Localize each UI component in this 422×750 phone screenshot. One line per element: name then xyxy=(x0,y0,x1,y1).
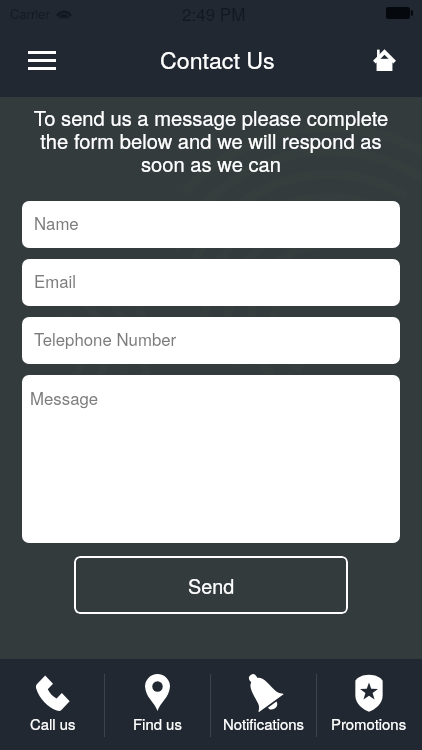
staticText: Message xyxy=(30,386,99,410)
staticText: Email xyxy=(34,269,76,293)
staticText: Send xyxy=(188,571,235,599)
staticText: Telephone Number xyxy=(34,327,177,351)
button[interactable]: Email xyxy=(22,259,400,306)
staticText: 2:49 PM xyxy=(182,1,246,25)
staticText: Name xyxy=(34,211,79,235)
staticText: Promotions xyxy=(331,713,407,734)
button[interactable]: Promotions xyxy=(316,659,422,750)
button[interactable]: Find us xyxy=(105,659,210,750)
staticText: Call us xyxy=(30,713,76,734)
staticText: Contact Us xyxy=(160,42,275,75)
button[interactable]: Telephone Number xyxy=(22,317,400,364)
button[interactable]: Menu xyxy=(14,32,70,88)
button[interactable]: Notifications xyxy=(210,659,316,750)
button[interactable]: Message xyxy=(22,375,400,543)
staticText: Notifications xyxy=(223,713,304,734)
staticText: Find us xyxy=(133,713,182,734)
button[interactable]: Home xyxy=(356,31,412,87)
staticText: Carrier xyxy=(10,4,50,23)
button[interactable]: Name xyxy=(22,201,400,248)
button[interactable]: Call us xyxy=(0,659,105,750)
button[interactable]: Send xyxy=(74,556,348,614)
staticText: To send us a message please complete the… xyxy=(6,103,416,178)
